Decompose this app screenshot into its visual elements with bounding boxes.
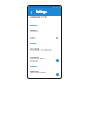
staticText: Network & net (30, 14, 48, 17)
staticText: Last sync 2 days (30, 71, 46, 74)
staticText: Display (30, 24, 38, 27)
staticText: On for all apps (30, 57, 45, 60)
staticText: Storage (30, 46, 40, 49)
staticText: Bubbles (30, 59, 38, 62)
staticText: Defaults (30, 30, 39, 33)
staticText: Settings (36, 10, 47, 14)
staticText: Bubbles (30, 60, 38, 63)
button[interactable]: Notifications (28, 56, 61, 65)
staticText: Sound (30, 42, 37, 45)
button[interactable]: Network & internet (28, 15, 61, 22)
staticText: Dark (30, 35, 36, 38)
staticText: Notifics (30, 55, 39, 58)
staticText: Defaults (30, 29, 39, 32)
staticText: Storage (30, 47, 40, 50)
staticText: 62% used - 48 GB free (30, 49, 52, 52)
button[interactable]: Apps (28, 29, 61, 35)
staticText: Backup (30, 69, 39, 72)
staticText: System (30, 65, 38, 68)
staticText: Apps (30, 28, 36, 31)
button[interactable]: Storage (28, 48, 61, 54)
button[interactable]: Dark theme checkbox (56, 37, 58, 39)
staticText: On for all apps (30, 57, 45, 60)
staticText: System (30, 65, 38, 68)
staticText: Dark (30, 36, 36, 39)
button[interactable]: Notifications toggle (56, 59, 59, 62)
staticText: Notifics (30, 55, 39, 58)
staticText: Settings (36, 10, 47, 14)
button[interactable]: Dark theme (28, 36, 61, 41)
staticText: Apps (30, 28, 36, 31)
staticText: Sound (30, 42, 37, 45)
staticText: Network & net (30, 15, 48, 18)
staticText: Wi-Fi, SIM (30, 16, 40, 19)
staticText: Backup (30, 69, 39, 72)
staticText: Wi-Fi, SIM (30, 16, 40, 19)
button[interactable]: Backup toggle (56, 73, 59, 76)
button[interactable]: Back (29, 10, 33, 14)
staticText: 62% used - 48 GB free (30, 48, 52, 51)
button[interactable]: Backup (28, 71, 61, 77)
staticText: Last sync 2 days (30, 71, 46, 74)
staticText: Display (30, 24, 38, 27)
